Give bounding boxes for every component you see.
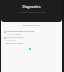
staticText: Diagnostics <box>1 5 62 9</box>
button[interactable]: Connection failed <box>1 35 62 41</box>
staticText: Connection failed <box>7 36 24 39</box>
staticText: running system checks now <box>1 11 62 14</box>
staticText: Service restarted successfully <box>7 30 35 33</box>
staticText: Today's activity log <box>1 24 62 27</box>
staticText: 11:02 completed <box>7 33 22 35</box>
button[interactable]: Service restarted successfully <box>1 29 62 35</box>
staticText: 11:06 retry <box>7 39 17 41</box>
staticText: Background tasks <box>6 42 23 45</box>
